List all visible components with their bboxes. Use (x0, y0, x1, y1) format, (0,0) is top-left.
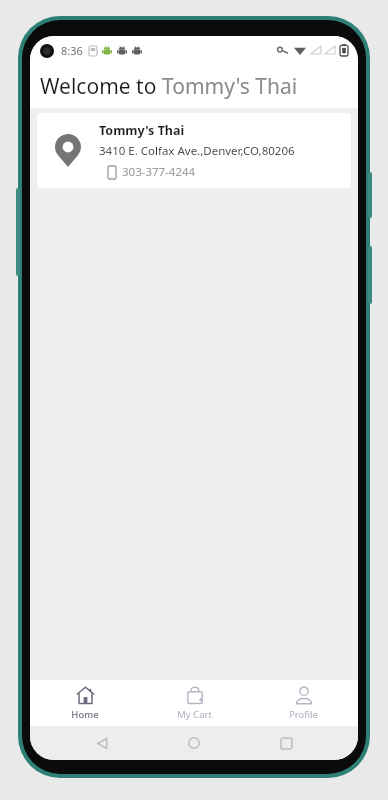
staticText: Tommy's Thai (99, 122, 185, 139)
button[interactable]: Recent apps (266, 726, 306, 760)
staticText: 3410 E. Colfax Ave.,Denver,CO,80206 (99, 143, 295, 159)
staticText: Welcome to (40, 72, 162, 101)
staticText: Home (71, 708, 99, 721)
staticText: 8:36 (61, 43, 83, 58)
button[interactable]: My Cart (140, 680, 249, 726)
button[interactable]: Home (174, 726, 214, 760)
staticText: Tommy's Thai (162, 72, 298, 101)
button[interactable]: Back (82, 726, 122, 760)
staticText: My Cart (177, 708, 212, 721)
staticText: 303-377-4244 (122, 164, 196, 180)
button[interactable]: Home (30, 680, 140, 726)
button[interactable]: Profile (249, 680, 358, 726)
staticText: Profile (289, 708, 318, 721)
button[interactable]: Tommy's Thai (37, 113, 351, 188)
